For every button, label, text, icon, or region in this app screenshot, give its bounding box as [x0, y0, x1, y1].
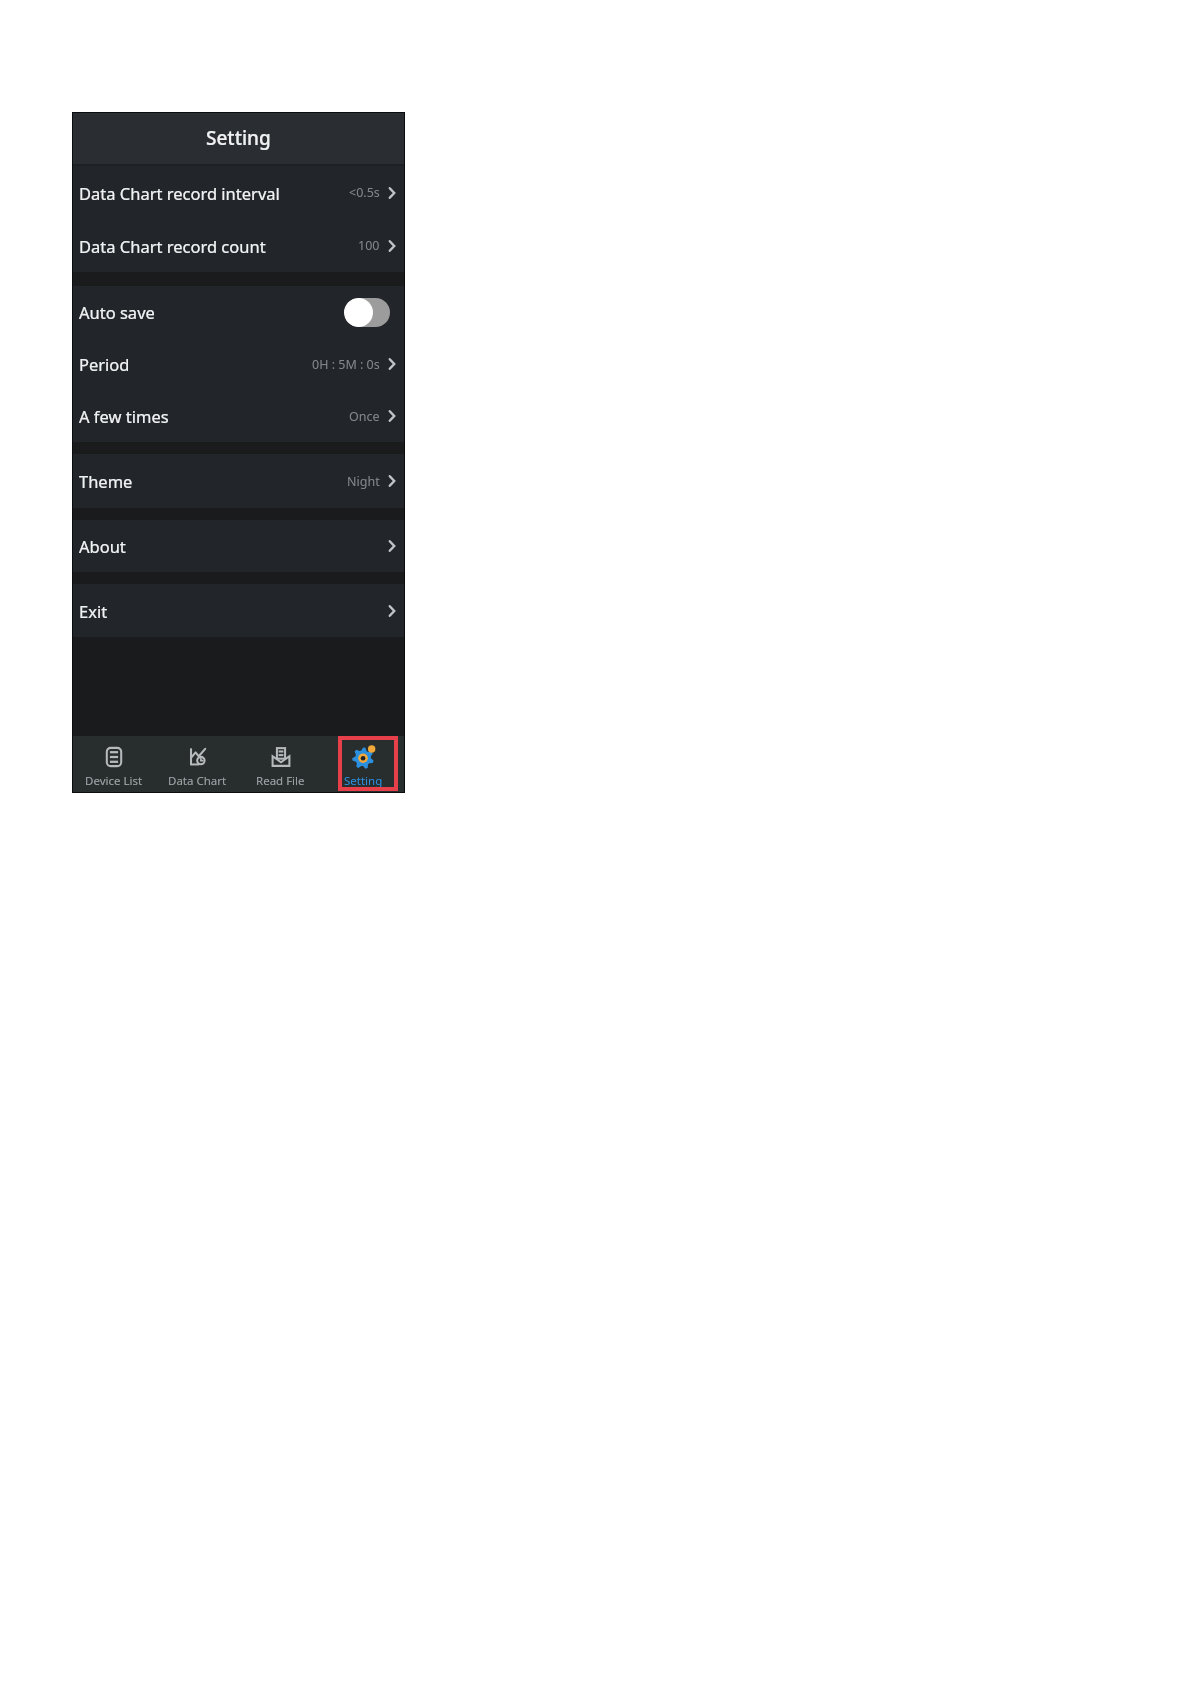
staticText: Theme [79, 470, 133, 492]
staticText: Exit [79, 600, 108, 622]
button[interactable]: Exit [72, 584, 405, 637]
button[interactable]: A few times [72, 390, 405, 442]
staticText: Device List [85, 773, 143, 789]
staticText: Once [349, 408, 380, 425]
staticText: Setting [344, 773, 383, 789]
button[interactable]: Period [72, 338, 405, 390]
staticText: <0.5s [349, 184, 380, 201]
button[interactable]: Data Chart record count [72, 219, 405, 272]
button[interactable]: Device List [72, 736, 156, 793]
button[interactable]: Theme [72, 454, 405, 508]
button[interactable]: About [72, 520, 405, 572]
staticText: Data Chart [168, 773, 227, 789]
staticText: About [79, 535, 126, 557]
staticText: Setting [206, 125, 271, 151]
button[interactable]: Data Chart record interval [72, 166, 405, 219]
button[interactable]: Auto save toggle, off [344, 298, 390, 327]
staticText: Data Chart record interval [79, 182, 280, 204]
button[interactable]: Auto save [72, 286, 405, 338]
staticText: 100 [358, 237, 380, 254]
staticText: Auto save [79, 301, 155, 323]
staticText: A few times [79, 405, 169, 427]
staticText: Data Chart record count [79, 235, 266, 257]
button[interactable]: Read File [239, 736, 322, 793]
button[interactable]: Setting [322, 736, 405, 793]
staticText: Night [347, 473, 380, 490]
staticText: 0H : 5M : 0s [312, 356, 380, 373]
staticText: Period [79, 353, 130, 375]
staticText: Read File [256, 773, 305, 789]
button[interactable]: Data Chart [156, 736, 239, 793]
